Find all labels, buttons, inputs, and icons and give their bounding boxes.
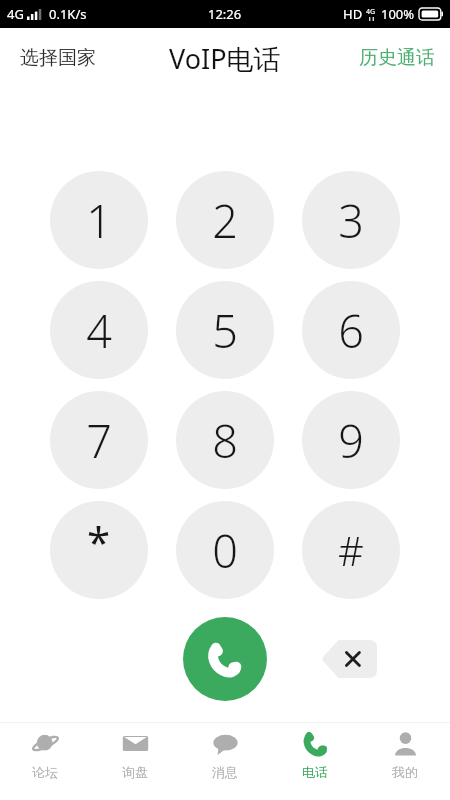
button[interactable]: Call: [183, 617, 267, 701]
staticText: 9: [338, 410, 364, 471]
staticText: 4G: [366, 7, 376, 17]
button[interactable]: 1: [50, 171, 148, 269]
staticText: 6: [338, 300, 364, 361]
staticText: 0: [212, 520, 238, 581]
button[interactable]: 我的: [360, 722, 450, 800]
staticText: 历史通话: [359, 46, 435, 70]
staticText: 0.1K/s: [49, 5, 87, 23]
button[interactable]: 消息: [180, 722, 270, 800]
button[interactable]: Delete: [321, 640, 377, 678]
button[interactable]: #: [302, 501, 400, 599]
staticText: 4: [86, 300, 112, 361]
button[interactable]: 8: [176, 391, 274, 489]
staticText: HD: [343, 5, 363, 23]
button[interactable]: 0: [176, 501, 274, 599]
button[interactable]: 4: [50, 281, 148, 379]
staticText: 7: [86, 410, 112, 471]
button[interactable]: 电话: [270, 722, 360, 800]
staticText: 电话: [302, 764, 328, 780]
button[interactable]: *: [50, 501, 148, 599]
button[interactable]: 7: [50, 391, 148, 489]
button[interactable]: 3: [302, 171, 400, 269]
button[interactable]: 历史通话: [344, 36, 450, 80]
staticText: 询盘: [122, 764, 148, 780]
staticText: 5: [212, 300, 238, 361]
staticText: 8: [212, 410, 238, 471]
staticText: 3: [338, 190, 364, 251]
button[interactable]: 2: [176, 171, 274, 269]
staticText: 选择国家: [20, 46, 96, 70]
staticText: 我的: [392, 764, 418, 780]
staticText: 论坛: [32, 764, 58, 780]
staticText: 1: [86, 190, 112, 251]
staticText: 消息: [212, 764, 238, 780]
staticText: VoIP电话: [169, 40, 281, 77]
staticText: 100%: [381, 5, 415, 23]
button[interactable]: 询盘: [90, 722, 180, 800]
staticText: 12:26: [208, 5, 242, 23]
staticText: #: [338, 523, 364, 577]
button[interactable]: 论坛: [0, 722, 90, 800]
button[interactable]: 6: [302, 281, 400, 379]
staticText: 2: [212, 190, 238, 251]
staticText: 4G: [7, 5, 24, 23]
button[interactable]: 5: [176, 281, 274, 379]
staticText: *: [87, 513, 111, 570]
button[interactable]: 9: [302, 391, 400, 489]
button[interactable]: 选择国家: [0, 36, 116, 80]
